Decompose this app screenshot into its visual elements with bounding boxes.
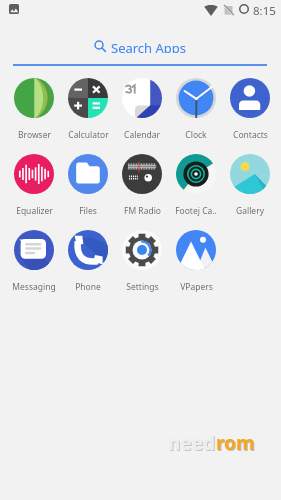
staticText: Settings: [126, 281, 159, 293]
staticText: rom: [217, 431, 256, 457]
staticText: Contacts: [233, 129, 268, 141]
button[interactable]: Contacts: [223, 78, 277, 141]
staticText: rom: [216, 430, 255, 456]
button[interactable]: Browser: [7, 78, 61, 141]
button[interactable]: Files: [61, 154, 115, 217]
button[interactable]: FM Radio: [115, 154, 169, 217]
staticText: Files: [79, 205, 97, 217]
staticText: Calendar: [124, 129, 160, 141]
staticText: Search Apps: [111, 39, 187, 53]
staticText: Phone: [75, 281, 101, 293]
button[interactable]: Gallery: [223, 154, 277, 217]
button[interactable]: Phone: [61, 230, 115, 293]
button[interactable]: Messaging: [7, 230, 61, 293]
staticText: VPapers: [180, 281, 213, 293]
staticText: Footej Ca..: [175, 205, 217, 217]
staticText: Browser: [18, 129, 51, 141]
button[interactable]: Clock: [169, 78, 223, 141]
button[interactable]: Search Apps: [0, 39, 281, 53]
staticText: Equalizer: [16, 205, 53, 217]
button[interactable]: VPapers: [169, 230, 223, 293]
button[interactable]: Settings: [115, 230, 169, 293]
staticText: Calculator: [68, 129, 109, 141]
staticText: FM Radio: [124, 205, 161, 217]
staticText: Clock: [185, 129, 207, 141]
button[interactable]: Calculator: [61, 78, 115, 141]
button[interactable]: Footej Ca..: [169, 154, 223, 217]
button[interactable]: Equalizer: [7, 154, 61, 217]
staticText: need: [169, 431, 217, 457]
button[interactable]: Calendar: [115, 78, 169, 141]
staticText: Gallery: [236, 205, 264, 217]
staticText: Messaging: [12, 281, 56, 293]
staticText: 8:15: [253, 3, 276, 19]
staticText: need: [168, 430, 216, 456]
